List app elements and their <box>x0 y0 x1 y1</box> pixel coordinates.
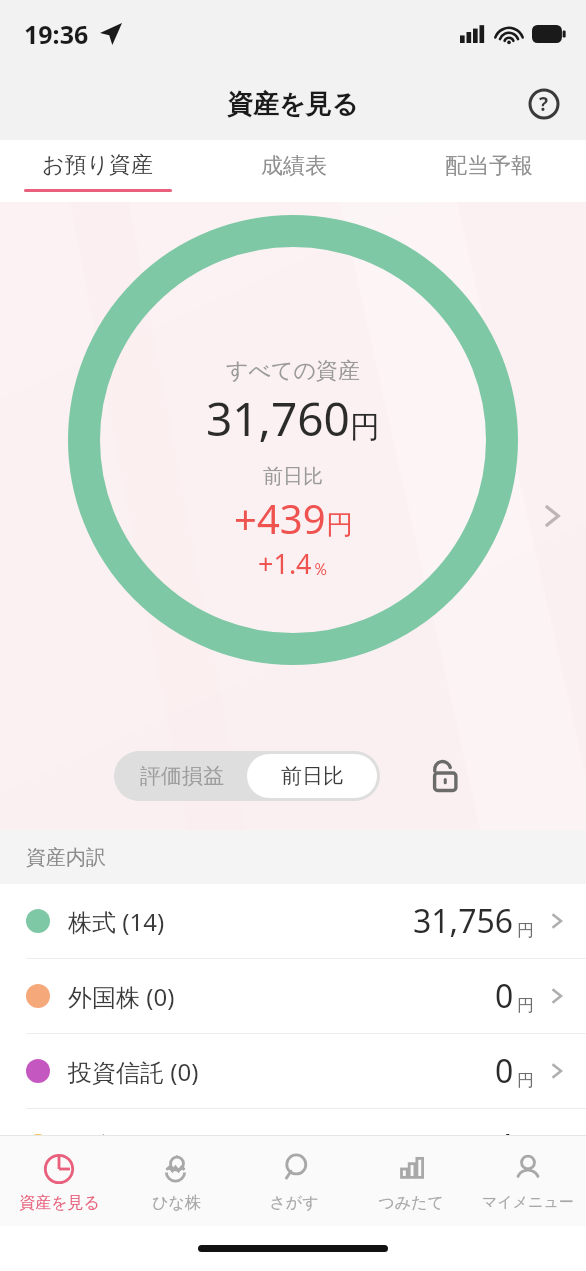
button[interactable]: 評価損益 <box>117 754 247 798</box>
staticText: 31,760 <box>206 387 350 450</box>
staticText: ? <box>539 91 549 117</box>
button[interactable]: さがす <box>235 1136 352 1226</box>
staticText: 資産内訳 <box>26 845 106 870</box>
staticText: 円 <box>517 920 534 941</box>
button[interactable]: マイメニュー <box>469 1136 586 1226</box>
button[interactable]: ひな株 <box>118 1136 235 1226</box>
staticText: ％ <box>312 559 329 580</box>
button[interactable]: Help <box>520 80 568 128</box>
button[interactable]: つみたて <box>352 1136 469 1226</box>
staticText: 資産を見る <box>19 1193 100 1213</box>
staticText: さがす <box>269 1193 319 1213</box>
button[interactable]: 外国株 (0) <box>0 959 586 1033</box>
button[interactable]: 株式 (14) <box>0 884 586 958</box>
staticText: 4 <box>495 1124 514 1168</box>
staticText: 円 <box>326 508 353 542</box>
staticText: 前日比 <box>281 763 344 789</box>
staticText: 投資信託 (0) <box>68 1055 199 1088</box>
button[interactable]: 現金 <box>0 1109 586 1183</box>
staticText: 成績表 <box>261 152 327 180</box>
staticText: 資産を見る <box>227 88 359 121</box>
button[interactable]: 成績表 <box>196 140 391 202</box>
button[interactable]: 投資信託 (0) <box>0 1034 586 1108</box>
staticText: 現金 <box>68 1131 116 1161</box>
staticText: ひな株 <box>152 1193 201 1213</box>
staticText: 配当予報 <box>445 152 533 180</box>
staticText: +439 <box>234 491 326 545</box>
button[interactable]: 資産を見る <box>0 1136 118 1226</box>
button[interactable]: お預り資産 <box>0 140 196 202</box>
staticText: 評価損益 <box>140 763 224 789</box>
button[interactable]: Next <box>524 489 578 543</box>
staticText: 円 <box>350 408 380 446</box>
staticText: お預り資産 <box>42 151 154 179</box>
staticText: 円 <box>517 1145 534 1166</box>
staticText: 0 <box>495 974 514 1018</box>
staticText: 円 <box>517 995 534 1016</box>
staticText: 0 <box>495 1049 514 1093</box>
staticText: 株式 (14) <box>68 905 165 938</box>
button[interactable]: 前日比 <box>247 754 377 798</box>
staticText: 円 <box>517 1070 534 1091</box>
staticText: 31,756 <box>413 899 514 943</box>
staticText: 外国株 (0) <box>68 980 175 1013</box>
staticText: 前日比 <box>263 464 323 489</box>
button[interactable]: Lock <box>420 750 472 802</box>
staticText: 19:36 <box>24 17 89 51</box>
button[interactable]: 配当予報 <box>391 140 586 202</box>
staticText: すべての資産 <box>226 357 361 385</box>
staticText: マイメニュー <box>482 1193 574 1212</box>
staticText: +1.4 <box>258 545 312 582</box>
staticText: つみたて <box>378 1193 444 1213</box>
